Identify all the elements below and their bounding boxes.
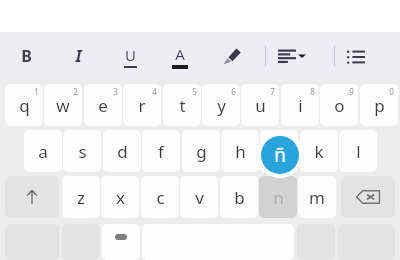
button[interactable]: n: [259, 176, 297, 218]
staticText: n: [273, 186, 284, 209]
button[interactable]: m: [298, 176, 336, 218]
button[interactable]: Bold: [10, 38, 42, 74]
staticText: r: [138, 94, 146, 117]
button[interactable]: Bulleted list: [340, 38, 372, 74]
staticText: A: [175, 44, 185, 64]
staticText: U: [125, 45, 136, 65]
button[interactable]: Underline: [114, 38, 146, 74]
staticText: I: [75, 45, 82, 67]
button[interactable]: a: [24, 130, 62, 172]
staticText: 3: [113, 86, 118, 97]
staticText: w: [56, 94, 70, 117]
button[interactable]: Backspace: [341, 176, 395, 218]
button[interactable]: i: [281, 84, 319, 126]
button[interactable]: h: [221, 130, 259, 172]
staticText: 2: [73, 86, 78, 97]
button[interactable]: k: [300, 130, 338, 172]
button[interactable]: Shift: [5, 176, 59, 218]
staticText: 8: [310, 86, 315, 97]
button[interactable]: d: [103, 130, 141, 172]
button[interactable]: Emoji: [102, 224, 140, 260]
button[interactable]: e: [84, 84, 122, 126]
staticText: 1: [34, 86, 39, 97]
button[interactable]: j: [260, 130, 298, 172]
button[interactable]: g: [182, 130, 220, 172]
staticText: ñ: [274, 142, 286, 168]
staticText: q: [19, 94, 30, 117]
button[interactable]: q: [5, 84, 43, 126]
button[interactable]: u: [241, 84, 279, 126]
button[interactable]: Alignment: [273, 38, 311, 74]
button[interactable]: v: [180, 176, 218, 218]
staticText: B: [21, 45, 32, 67]
staticText: h: [235, 140, 246, 163]
button[interactable]: Text color: [164, 38, 196, 74]
button[interactable]: p: [360, 84, 398, 126]
staticText: d: [117, 140, 128, 163]
staticText: 6: [231, 86, 236, 97]
button[interactable]: x: [101, 176, 139, 218]
button[interactable]: Italic: [62, 38, 94, 74]
staticText: k: [314, 140, 324, 163]
button[interactable]: y: [202, 84, 240, 126]
staticText: 0: [389, 86, 394, 97]
button[interactable]: t: [163, 84, 201, 126]
staticText: i: [298, 94, 303, 117]
staticText: a: [38, 140, 48, 163]
staticText: o: [334, 94, 345, 117]
staticText: j: [277, 140, 282, 163]
staticText: z: [77, 186, 85, 209]
button[interactable]: w: [44, 84, 82, 126]
staticText: c: [156, 186, 165, 209]
staticText: v: [195, 186, 204, 209]
button[interactable]: Highlight: [216, 38, 248, 74]
staticText: p: [374, 94, 385, 117]
staticText: 4: [152, 86, 157, 97]
staticText: m: [309, 186, 325, 209]
button[interactable]: f: [142, 130, 180, 172]
button[interactable]: b: [220, 176, 258, 218]
staticText: l: [356, 140, 361, 163]
button[interactable]: n with tilde accent: [257, 132, 303, 178]
button[interactable]: s: [63, 130, 101, 172]
staticText: 5: [192, 86, 197, 97]
staticText: 9: [349, 86, 354, 97]
staticText: u: [255, 94, 266, 117]
button[interactable]: o: [320, 84, 358, 126]
staticText: g: [196, 140, 207, 163]
button[interactable]: z: [62, 176, 100, 218]
staticText: e: [98, 94, 108, 117]
staticText: 7: [270, 86, 275, 97]
button[interactable]: r: [123, 84, 161, 126]
staticText: s: [78, 140, 87, 163]
button[interactable]: l: [339, 130, 377, 172]
staticText: x: [116, 186, 125, 209]
staticText: y: [217, 94, 226, 117]
staticText: t: [179, 94, 186, 117]
button[interactable]: c: [141, 176, 179, 218]
staticText: b: [234, 186, 245, 209]
staticText: f: [158, 140, 164, 163]
